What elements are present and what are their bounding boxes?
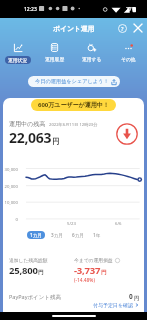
staticText: 追加した残高総額 — [9, 257, 48, 263]
staticText: 円 — [38, 269, 44, 276]
staticText: 付与予定日を確認 — [93, 302, 134, 308]
staticText: -3,737 — [74, 264, 101, 277]
button[interactable]: 運用状況 — [0, 41, 36, 65]
button[interactable]: 運用履歴 — [36, 41, 73, 65]
staticText: 運用中の残高 — [9, 120, 46, 128]
staticText: 今日の運用益をシェアしよう！ — [35, 78, 109, 85]
button[interactable]: 6カ月 — [69, 231, 87, 239]
staticText: 5/23 — [67, 220, 76, 226]
staticText: 円 — [134, 295, 139, 301]
button[interactable]: 今日の運用益をシェアしよう！ — [28, 76, 120, 87]
staticText: 1カ月 — [30, 232, 42, 238]
button[interactable]: 1カ月 — [27, 231, 45, 239]
staticText: 1年 — [93, 232, 101, 238]
button[interactable]: 閉じる — [131, 22, 144, 34]
staticText: 22,063 — [9, 128, 52, 147]
staticText: 今までの運用損益 — [74, 257, 113, 263]
staticText: 12:23 — [24, 6, 37, 13]
staticText: 6/6 — [115, 220, 122, 226]
staticText: 77% — [126, 6, 136, 13]
button[interactable]: その他 — [110, 41, 147, 65]
staticText: 0 — [129, 292, 133, 301]
staticText: 20,000 — [3, 183, 18, 189]
staticText: (-14.48%) — [74, 277, 95, 284]
button[interactable]: 運用する — [73, 41, 110, 65]
staticText: 30,000 — [3, 166, 18, 172]
staticText: ? — [121, 25, 124, 32]
button[interactable]: 1年 — [90, 231, 104, 239]
staticText: 2022年6月11日 12時23分 — [49, 122, 98, 128]
staticText: PayPayポイント残高 — [9, 293, 61, 301]
staticText: 運用する — [82, 56, 102, 62]
staticText: 25,800 — [9, 264, 38, 277]
staticText: 6カ月 — [72, 232, 84, 238]
staticText: 運用履歴 — [45, 56, 65, 62]
button[interactable]: ヘルプ — [116, 22, 129, 34]
staticText: ポイント運用 — [53, 24, 95, 33]
staticText: 円 — [101, 269, 107, 276]
staticText: 円 — [52, 137, 60, 146]
staticText: その他 — [121, 56, 136, 62]
staticText: 運用状況 — [8, 57, 28, 63]
button[interactable]: 3カ月 — [48, 231, 66, 239]
button[interactable]: 付与予定日を確認 — [93, 302, 139, 308]
staticText: 3カ月 — [51, 232, 63, 238]
button[interactable]: 引き出す — [115, 122, 139, 146]
staticText: 0 — [3, 216, 18, 222]
staticText: 600万ユーザーが運用中！ — [38, 101, 109, 109]
staticText: 10,000 — [3, 199, 18, 205]
